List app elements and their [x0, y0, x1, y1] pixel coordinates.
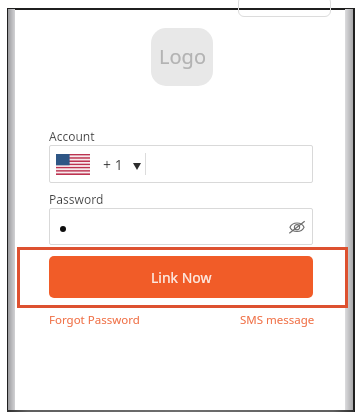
staticText: Password	[49, 191, 104, 207]
staticText: Link Now	[151, 268, 212, 287]
button[interactable]: Forgot Password	[49, 312, 140, 328]
button[interactable]: Show password	[289, 221, 305, 233]
button[interactable]: Link Now	[49, 256, 313, 298]
staticText: Account	[49, 128, 95, 144]
button[interactable]: Show password	[49, 208, 313, 245]
button[interactable]: SMS message	[240, 312, 315, 328]
staticText: Logo	[159, 43, 206, 70]
staticText: + 1	[103, 155, 123, 174]
button[interactable]: + 1	[49, 145, 313, 183]
